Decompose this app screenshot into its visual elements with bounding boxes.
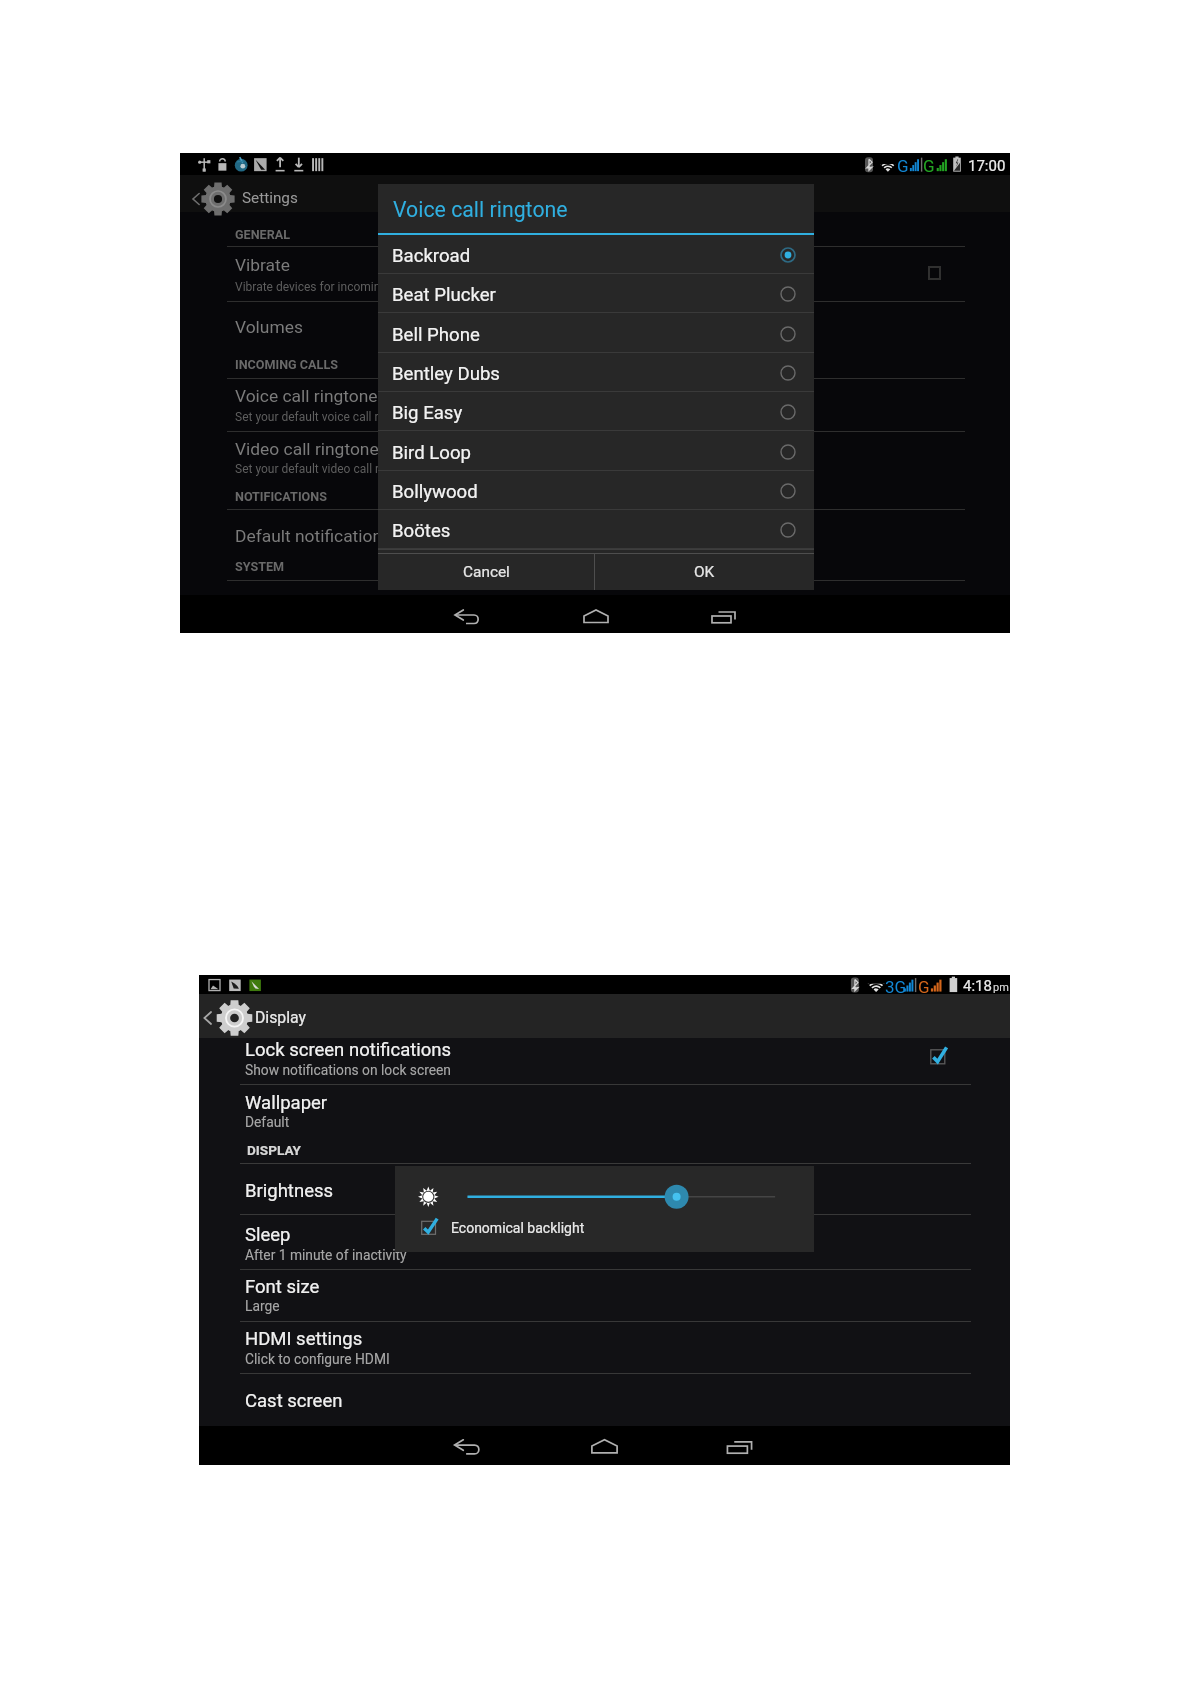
staticText: Default [245, 1114, 290, 1130]
button[interactable]: Backroad [378, 235, 814, 274]
staticText: Cancel [463, 563, 510, 581]
staticText: Click to configure HDMI [245, 1351, 390, 1367]
button[interactable]: Lock screen notifications [245, 1039, 452, 1061]
button[interactable]: Bell Phone [378, 314, 814, 353]
staticText: Set your default voice call ringtone [235, 410, 419, 424]
staticText: GENERAL [235, 227, 290, 242]
button[interactable]: Sleep [245, 1224, 291, 1246]
staticText: Vibrate devices for incoming calls [235, 280, 415, 294]
staticText: Bollywood [392, 481, 478, 503]
staticText: OK [694, 563, 715, 581]
button[interactable]: Economical backlight [451, 1220, 585, 1236]
button[interactable]: Back [203, 997, 503, 1035]
button[interactable]: Big Easy [378, 392, 814, 431]
staticText: G [923, 156, 935, 176]
staticText: Boötes [392, 520, 451, 542]
button[interactable]: Back [190, 178, 490, 210]
staticText: 4:18 [963, 977, 992, 995]
staticText: Backroad [392, 245, 471, 267]
staticText: Large [245, 1298, 280, 1314]
button[interactable]: HDMI settings [245, 1328, 363, 1350]
staticText: Voice call ringtone [393, 197, 568, 222]
staticText: pm [993, 981, 1009, 994]
staticText: SYSTEM [235, 559, 285, 574]
button[interactable]: Vibrate [235, 255, 290, 275]
staticText: 3G [885, 977, 907, 996]
button[interactable]: Video call ringtone [235, 439, 379, 459]
staticText: Show notifications on lock screen [245, 1062, 451, 1078]
button[interactable]: Cancel [378, 554, 594, 590]
button[interactable]: Font size [245, 1276, 320, 1298]
staticText: After 1 minute of inactivity [245, 1247, 407, 1263]
staticText: NOTIFICATIONS [235, 489, 327, 504]
button[interactable]: Bentley Dubs [378, 353, 814, 392]
button[interactable]: OK [595, 554, 814, 590]
button[interactable]: Default notification [235, 526, 383, 546]
button[interactable]: Lock screen notifications toggle [925, 1043, 953, 1071]
staticText: INCOMING CALLS [235, 357, 338, 372]
button[interactable]: Cast screen [245, 1390, 343, 1412]
staticText: Bentley Dubs [392, 363, 500, 385]
staticText: G [918, 977, 930, 996]
staticText: Bird Loop [392, 442, 471, 464]
button[interactable]: Economical backlight [416, 1215, 442, 1240]
button[interactable]: Bollywood [378, 471, 814, 510]
button[interactable]: Voice call ringtone [235, 386, 378, 406]
staticText: Big Easy [392, 402, 463, 424]
staticText: Bell Phone [392, 324, 480, 346]
staticText: G [897, 156, 909, 176]
staticText: Beat Plucker [392, 284, 496, 306]
staticText: Display [255, 1008, 307, 1027]
staticText: DISPLAY [247, 1142, 301, 1158]
staticText: Set your default video call ringtone [235, 462, 420, 476]
button[interactable]: Bird Loop [378, 432, 814, 471]
button[interactable]: Volumes [235, 317, 303, 337]
button[interactable]: Beat Plucker [378, 274, 814, 313]
staticText: 17:00 [968, 157, 1006, 175]
staticText: Settings [242, 189, 298, 207]
button[interactable]: Boötes [378, 510, 814, 549]
button[interactable]: Brightness [245, 1180, 334, 1202]
button[interactable]: Wallpaper [245, 1092, 328, 1114]
button[interactable]: Vibrate toggle [928, 266, 941, 280]
